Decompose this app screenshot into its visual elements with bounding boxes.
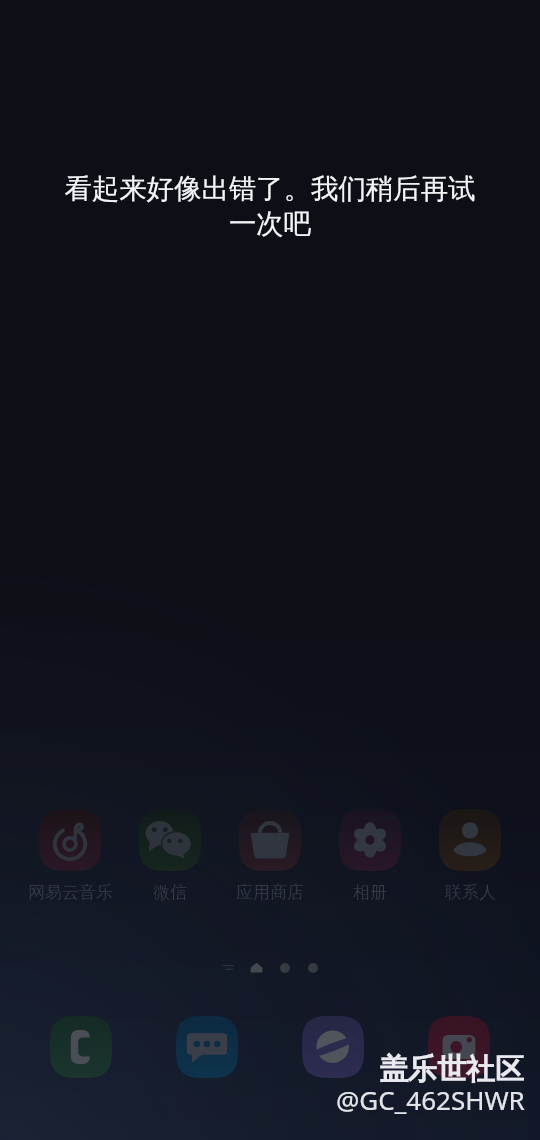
button[interactable]: Camera (428, 1016, 490, 1078)
button[interactable]: Home (250, 961, 263, 974)
button[interactable]: 网易云音乐 (22, 809, 118, 903)
staticText: 网易云音乐 (28, 882, 113, 903)
staticText: @GC_462SHWR (336, 1082, 525, 1117)
staticText: 盖乐世社区 (379, 1051, 524, 1088)
button[interactable]: 应用商店 (222, 809, 318, 903)
button[interactable]: 微信 (122, 809, 218, 903)
button[interactable]: App list (223, 961, 236, 974)
button[interactable]: 联系人 (422, 809, 518, 903)
staticText: 联系人 (445, 882, 496, 903)
staticText: 看起来好像出错了。我们稍后再试一次吧 (61, 172, 479, 241)
button[interactable]: Page 3 (308, 963, 318, 973)
button[interactable]: Messages (176, 1016, 238, 1078)
button[interactable]: Internet (302, 1016, 364, 1078)
button[interactable]: 相册 (322, 809, 418, 903)
button[interactable]: Page 2 (280, 963, 290, 973)
staticText: 微信 (153, 882, 187, 903)
staticText: 相册 (353, 882, 387, 903)
staticText: 应用商店 (236, 882, 304, 903)
button[interactable]: Phone (50, 1016, 112, 1078)
